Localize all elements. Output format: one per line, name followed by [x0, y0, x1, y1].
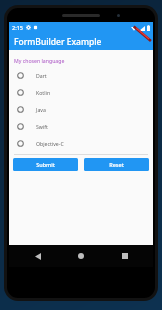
- button[interactable]: Kotlin: [9, 84, 153, 101]
- staticText: Java: [36, 106, 46, 113]
- staticText: Swift: [36, 123, 48, 130]
- staticText: Kotlin: [36, 89, 51, 96]
- button[interactable]: Submit: [13, 158, 78, 171]
- staticText: 2:15: [12, 24, 23, 31]
- button[interactable]: Back: [23, 245, 53, 267]
- staticText: My chosen language: [14, 57, 65, 64]
- staticText: Reset: [109, 161, 124, 168]
- button[interactable]: Home: [66, 245, 96, 267]
- staticText: Submit: [36, 161, 55, 168]
- button[interactable]: Reset: [84, 158, 149, 171]
- button[interactable]: Recent apps: [110, 245, 140, 267]
- button[interactable]: Java: [9, 101, 153, 118]
- staticText: Dart: [36, 72, 47, 79]
- staticText: Objective-C: [36, 140, 64, 147]
- button[interactable]: Objective-C: [9, 135, 153, 152]
- button[interactable]: Swift: [9, 118, 153, 135]
- button[interactable]: Dart: [9, 67, 153, 84]
- staticText: FormBuilder Example: [14, 36, 102, 48]
